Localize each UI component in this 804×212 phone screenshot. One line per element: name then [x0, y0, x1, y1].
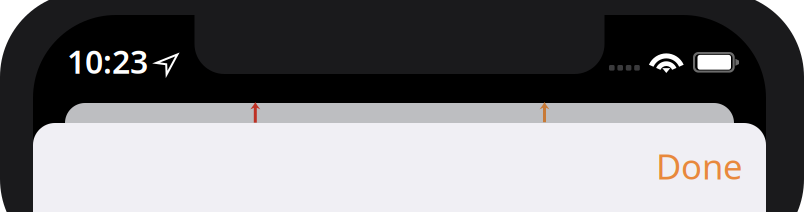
staticText: Done: [656, 143, 743, 189]
staticText: 10:23: [67, 40, 148, 82]
button[interactable]: Done: [642, 134, 757, 198]
